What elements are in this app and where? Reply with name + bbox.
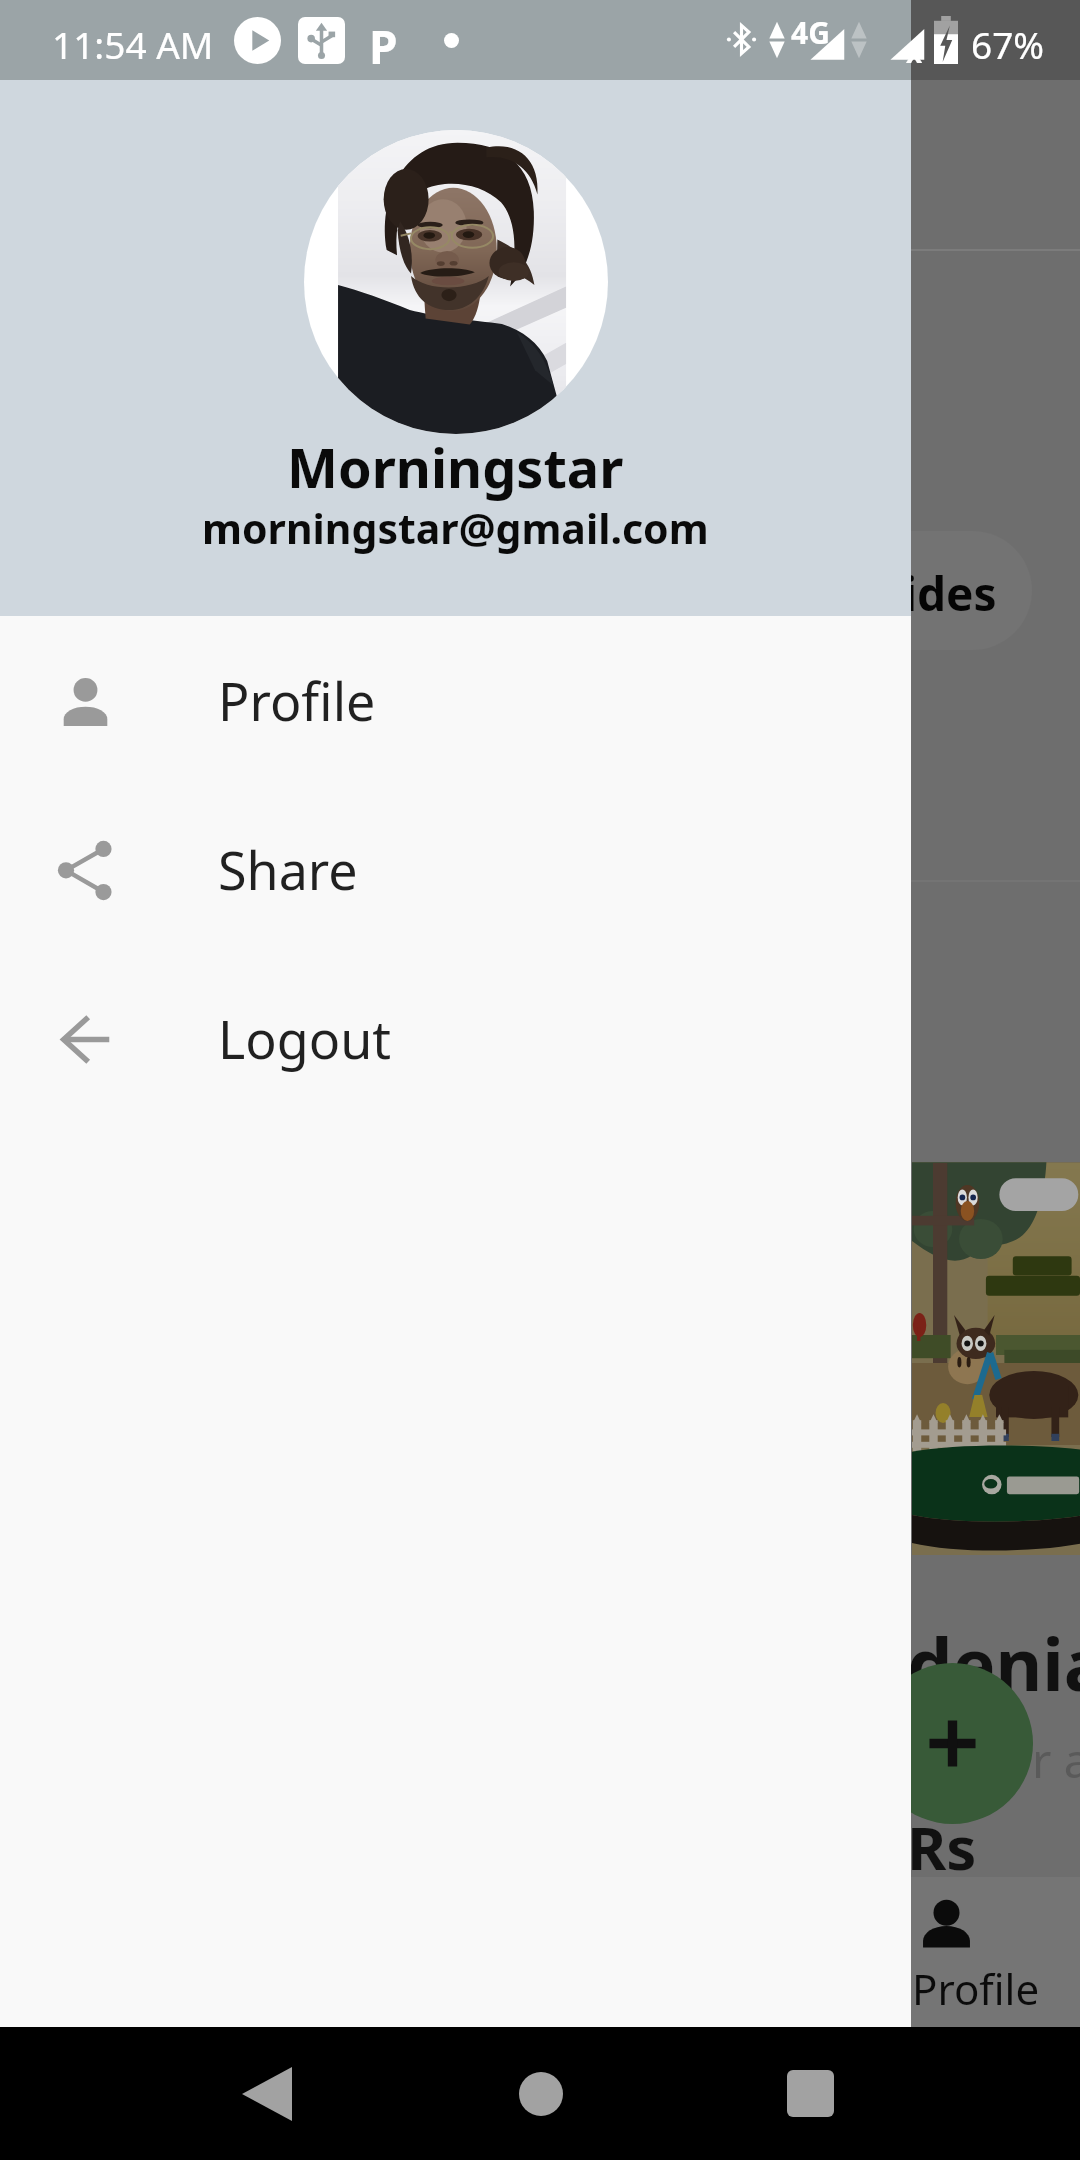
- staticText: Morningstar: [287, 430, 624, 504]
- staticText: Profile: [912, 1960, 1040, 2017]
- button[interactable]: Profile: [0, 616, 911, 785]
- other: Profile photo: [304, 130, 608, 434]
- staticText: morningstar@gmail.com: [202, 500, 709, 556]
- staticText: 4G: [791, 12, 830, 53]
- staticText: Rs: [907, 1806, 977, 1888]
- button[interactable]: Recent apps: [750, 2027, 870, 2160]
- staticText: Besides: [822, 562, 997, 625]
- staticText: P: [369, 15, 398, 78]
- button[interactable]: Back: [207, 2027, 327, 2160]
- button[interactable]: Profile: [859, 1877, 1080, 2027]
- staticText: r a: [1032, 1728, 1080, 1792]
- button[interactable]: Share: [0, 785, 911, 954]
- staticText: Profile: [218, 665, 376, 736]
- button[interactable]: Besides: [700, 531, 1032, 650]
- staticText: Share: [218, 834, 358, 905]
- button[interactable]: Add: [872, 1663, 1033, 1824]
- button[interactable]: Profile photo: [0, 0, 911, 616]
- staticText: 11:54 AM: [52, 19, 214, 69]
- button[interactable]: Home: [481, 2027, 601, 2160]
- staticText: x: [906, 33, 923, 71]
- staticText: Logout: [218, 1003, 392, 1074]
- staticText: 67%: [971, 19, 1045, 69]
- staticText: denia: [907, 1614, 1080, 1712]
- button[interactable]: Logout: [0, 954, 911, 1123]
